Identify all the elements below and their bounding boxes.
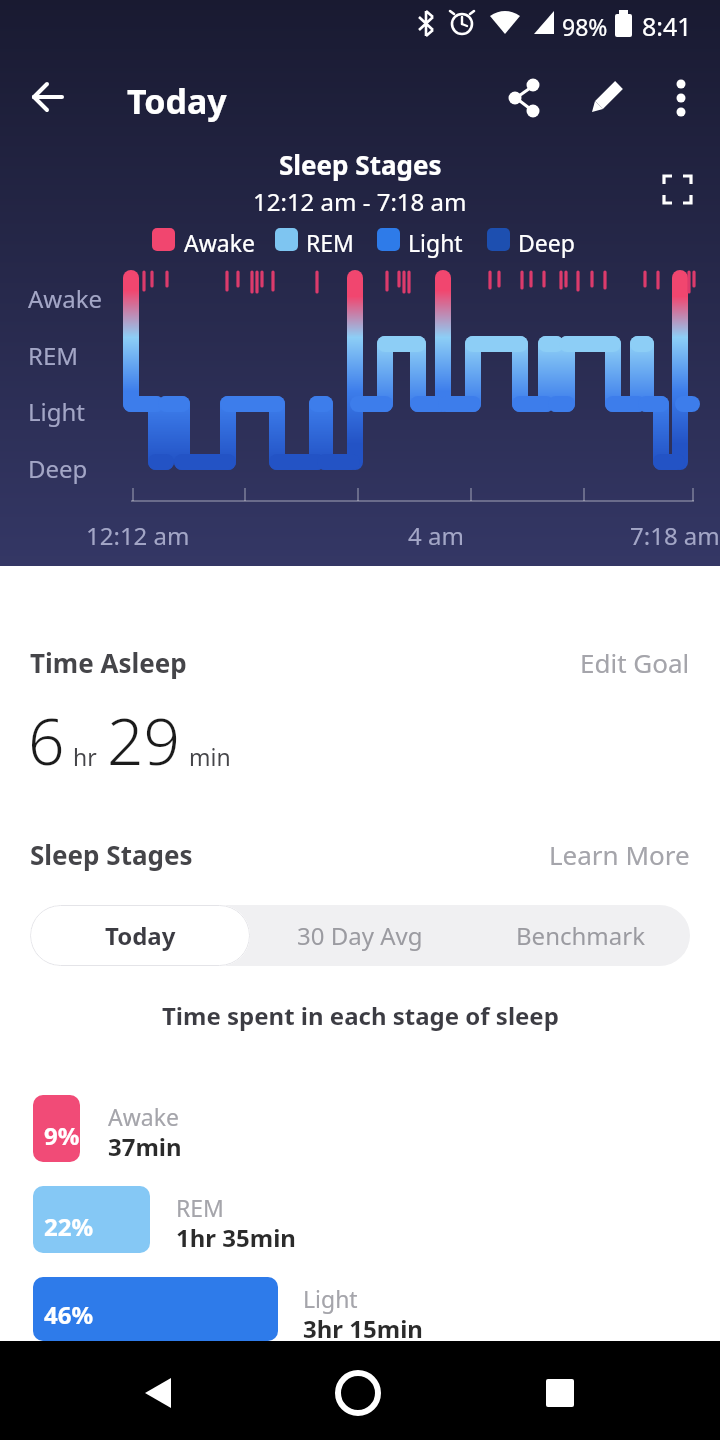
button[interactable]: Benchmark bbox=[470, 905, 690, 966]
staticText: 46% bbox=[44, 1298, 94, 1331]
staticText: min bbox=[189, 741, 231, 772]
staticText: Light bbox=[408, 227, 463, 258]
button[interactable] bbox=[501, 73, 549, 121]
staticText: hr bbox=[73, 741, 97, 772]
button[interactable] bbox=[24, 73, 72, 121]
staticText: Sleep Stages bbox=[30, 837, 193, 872]
staticText: 98% bbox=[562, 11, 608, 42]
staticText: Time spent in each stage of sleep bbox=[162, 999, 559, 1032]
staticText: Light bbox=[28, 395, 86, 428]
staticText: 22% bbox=[44, 1210, 94, 1243]
staticText: Awake bbox=[28, 282, 103, 315]
button[interactable] bbox=[328, 1363, 388, 1423]
staticText: 30 Day Avg bbox=[297, 919, 423, 952]
staticText: Benchmark bbox=[516, 919, 645, 952]
staticText: 6 bbox=[28, 697, 65, 784]
staticText: 8:41 bbox=[642, 9, 692, 43]
staticText: 7:18 am bbox=[630, 519, 720, 552]
staticText: 3hr 15min bbox=[303, 1312, 423, 1345]
staticText: Sleep Stages bbox=[279, 147, 442, 182]
staticText: Today bbox=[127, 78, 227, 124]
staticText: Time Asleep bbox=[30, 645, 187, 680]
button[interactable]: 30 Day Avg bbox=[250, 905, 470, 966]
staticText: REM bbox=[28, 339, 79, 372]
staticText: 12:12 am bbox=[86, 519, 190, 552]
button[interactable]: Today bbox=[30, 905, 250, 966]
staticText: 29 bbox=[107, 697, 181, 784]
staticText: Deep bbox=[28, 452, 88, 485]
staticText: 9% bbox=[44, 1119, 80, 1152]
staticText: Deep bbox=[518, 227, 575, 258]
staticText: REM bbox=[306, 227, 354, 258]
staticText: Today bbox=[105, 919, 176, 952]
button[interactable] bbox=[583, 73, 631, 121]
staticText: 37min bbox=[108, 1130, 182, 1163]
staticText: 1hr 35min bbox=[176, 1221, 296, 1254]
staticText: Awake bbox=[184, 227, 255, 258]
button[interactable] bbox=[652, 166, 700, 214]
staticText: REM bbox=[176, 1192, 224, 1223]
button[interactable] bbox=[128, 1363, 188, 1423]
button[interactable]: 46% bbox=[33, 1277, 278, 1341]
button[interactable]: Edit Goal bbox=[580, 645, 690, 680]
button[interactable] bbox=[530, 1363, 590, 1423]
button[interactable] bbox=[657, 73, 705, 121]
button[interactable]: 9% bbox=[33, 1095, 80, 1162]
staticText: Awake bbox=[108, 1101, 179, 1132]
staticText: Light bbox=[303, 1283, 358, 1314]
staticText: 4 am bbox=[408, 519, 464, 552]
button[interactable]: Learn More bbox=[549, 837, 690, 872]
staticText: 12:12 am - 7:18 am bbox=[253, 185, 467, 218]
button[interactable]: 22% bbox=[33, 1186, 150, 1253]
